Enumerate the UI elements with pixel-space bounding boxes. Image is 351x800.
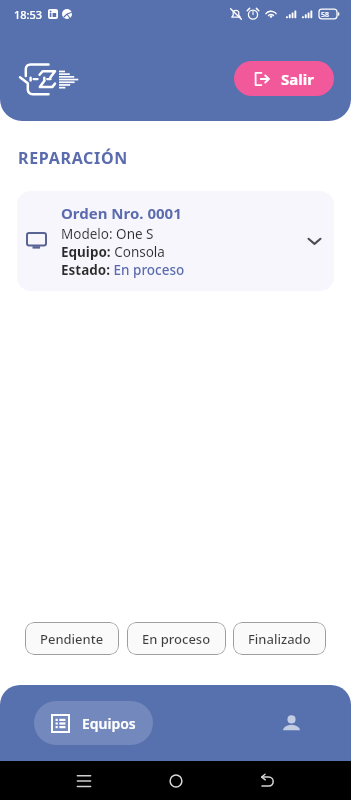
button[interactable]: Pendiente [25,622,119,655]
button[interactable]: En proceso [127,622,226,655]
button[interactable]: Expandir [305,232,324,251]
staticText: Modelo: One S [61,225,154,243]
staticText: Pendiente [40,630,104,648]
staticText: 18:53 [14,7,43,22]
button[interactable]: Equipos [34,701,153,745]
staticText: Equipos [82,714,136,733]
staticText: Orden Nro. 0001 [61,203,182,223]
staticText: Estado: En proceso [61,261,185,279]
staticText: Equipo: Consola [61,243,165,261]
staticText: REPARACIÓN [18,147,129,169]
staticText: 58 [321,10,330,20]
button[interactable]: Salir [234,61,334,96]
staticText: Salir [281,69,314,89]
staticText: Finalizado [248,630,311,648]
staticText: En proceso [142,630,211,648]
button[interactable]: Orden Nro. 0001 [17,191,334,291]
button[interactable]: Finalizado [233,622,326,655]
button[interactable]: Perfil [271,703,312,744]
